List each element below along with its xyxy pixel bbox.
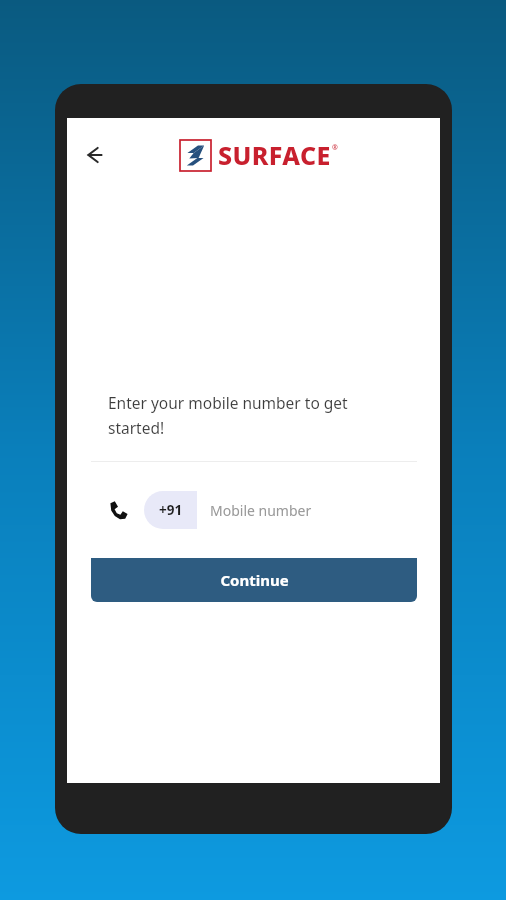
button[interactable]: Continue: [91, 558, 417, 602]
staticText: SURFACE: [218, 138, 331, 172]
staticText: Continue: [220, 570, 289, 590]
staticText: ®: [332, 143, 338, 153]
staticText: Mobile number: [210, 501, 312, 520]
button[interactable]: Back: [73, 133, 117, 177]
staticText: Enter your mobile number to get started!: [108, 392, 403, 439]
staticText: +91: [159, 501, 183, 519]
button[interactable]: +91: [144, 491, 403, 529]
